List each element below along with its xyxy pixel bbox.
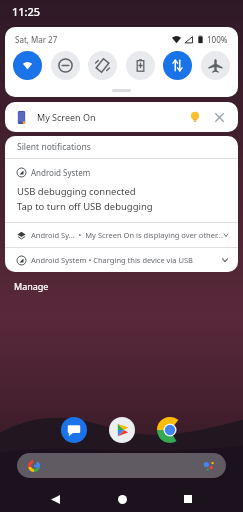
button[interactable]: Android System bbox=[5, 159, 238, 222]
button[interactable]: Mobile data bbox=[163, 51, 192, 80]
button[interactable]: Do not disturb bbox=[51, 51, 80, 80]
button[interactable]: Wi-Fi bbox=[13, 51, 42, 80]
staticText: USB debugging connected bbox=[17, 185, 136, 198]
button[interactable]: Airplane mode bbox=[201, 51, 230, 80]
button[interactable]: Android Sy... • My Screen On is displayi… bbox=[5, 223, 238, 247]
staticText: Silent notifications bbox=[17, 141, 91, 153]
staticText: Sat, Mar 27 bbox=[15, 34, 58, 45]
button[interactable]: Chrome bbox=[157, 417, 183, 443]
button[interactable]: Android System • Charging this device vi… bbox=[5, 248, 238, 272]
staticText: 100% bbox=[207, 34, 228, 45]
staticText: Android System bbox=[31, 167, 91, 178]
button[interactable]: Battery saver bbox=[126, 51, 155, 80]
staticText: My Screen On bbox=[37, 111, 96, 123]
staticText: Android System • Charging this device vi… bbox=[31, 255, 193, 265]
staticText: Manage bbox=[14, 280, 49, 292]
button[interactable]: My Screen On bbox=[5, 102, 238, 132]
button[interactable]: Auto rotate bbox=[88, 51, 117, 80]
button[interactable]: Manage bbox=[14, 280, 49, 292]
staticText: Tap to turn off USB debugging bbox=[17, 200, 153, 213]
staticText: 11:25 bbox=[12, 4, 41, 19]
button[interactable]: Play Store bbox=[109, 417, 135, 443]
button[interactable]: Dismiss bbox=[210, 108, 228, 126]
button[interactable]: Back bbox=[44, 488, 66, 510]
button[interactable]: Toggle screen on bbox=[186, 108, 204, 126]
staticText: Android Sy... • My Screen On is displayi… bbox=[31, 230, 223, 240]
button[interactable]: Recents bbox=[177, 488, 199, 510]
button[interactable]: Messages bbox=[61, 417, 87, 443]
button[interactable] bbox=[17, 453, 226, 478]
button[interactable]: Home bbox=[111, 488, 133, 510]
